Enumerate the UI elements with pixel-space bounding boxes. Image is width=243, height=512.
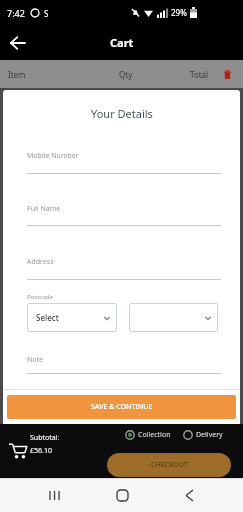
- button[interactable]: [129, 303, 218, 332]
- button[interactable]: [43, 483, 67, 507]
- staticText: Address: [27, 257, 54, 267]
- staticText: S: [44, 8, 49, 19]
- staticText: Note: [27, 355, 44, 365]
- staticText: Collection: [138, 430, 171, 440]
- button[interactable]: [6, 31, 30, 55]
- staticText: Item: [8, 69, 26, 80]
- staticText: 29%: [171, 7, 187, 18]
- staticText: Delivery: [196, 430, 223, 440]
- button[interactable]: CHECKOUT: [107, 453, 231, 477]
- button[interactable]: Collection: [125, 430, 171, 440]
- staticText: Total: [190, 69, 209, 80]
- staticText: Select: [36, 312, 59, 323]
- staticText: Your Details: [91, 106, 153, 121]
- staticText: Postcode: [27, 293, 53, 301]
- staticText: Mobile Number: [27, 151, 79, 161]
- button[interactable]: SAVE & CONTINUE: [7, 395, 236, 419]
- staticText: Qty: [119, 69, 133, 80]
- staticText: Cart: [110, 35, 134, 50]
- button[interactable]: Delivery: [183, 430, 223, 440]
- staticText: Full Name: [27, 204, 61, 214]
- staticText: SAVE & CONTINUE: [91, 402, 153, 412]
- staticText: CHECKOUT: [151, 460, 188, 470]
- staticText: Subtotal:: [30, 433, 60, 443]
- staticText: 7:42: [7, 7, 25, 19]
- staticText: £56.10: [30, 446, 52, 456]
- button[interactable]: [110, 483, 134, 507]
- button[interactable]: Select: [27, 303, 117, 332]
- button[interactable]: [221, 68, 233, 80]
- button[interactable]: [177, 483, 201, 507]
